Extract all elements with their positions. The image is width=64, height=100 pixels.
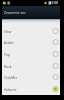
button[interactable]: Valsomi [2,83,60,95]
button[interactable]: ClubMix [2,71,60,83]
staticText: Zvonenie sec [4,10,26,15]
staticText: ClubMix [4,75,52,80]
button[interactable]: Slow [2,25,60,37]
button[interactable]: Zvonenie sec [2,6,60,19]
staticText: Rock [4,64,52,69]
staticText: Arabic [4,40,52,45]
staticText: 12:58 [50,1,59,5]
staticText: Pop [4,52,52,57]
button[interactable]: Rock [2,60,60,72]
staticText: Valsomi [4,87,52,92]
staticText: Slow [4,29,52,34]
button[interactable]: Pop [2,48,60,60]
button[interactable]: Arabic [2,36,60,48]
